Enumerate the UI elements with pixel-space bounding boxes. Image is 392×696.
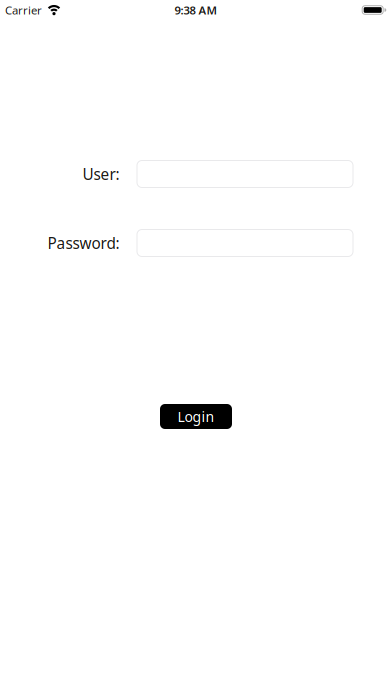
button[interactable]: Login [160,404,232,429]
staticText: Carrier [5,2,42,17]
staticText: Password: [47,233,119,253]
button[interactable]: User: text field [136,160,353,188]
button[interactable]: Password: text field [136,229,353,257]
staticText: Login [177,407,214,426]
staticText: 9:38 AM [174,2,217,17]
staticText: User: [82,164,119,184]
